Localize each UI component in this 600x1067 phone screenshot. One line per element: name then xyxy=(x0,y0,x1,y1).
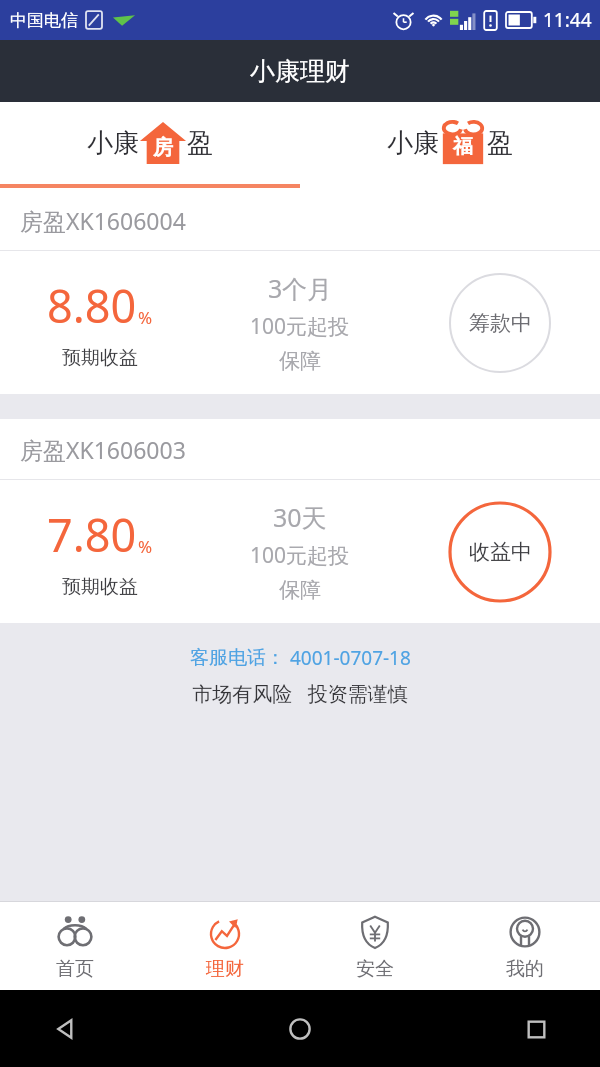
button[interactable]: 理财 xyxy=(150,902,300,990)
button[interactable]: Recents xyxy=(508,1001,564,1057)
staticText: 我的 xyxy=(506,957,544,981)
staticText: % xyxy=(138,306,153,329)
staticText: 首页 xyxy=(56,957,94,981)
staticText: 盈 xyxy=(187,127,213,160)
button[interactable]: 小康 xyxy=(0,102,300,184)
button[interactable]: 房盈XK1606004 xyxy=(0,190,600,394)
staticText: 4001-0707-18 xyxy=(285,645,411,671)
staticText: 福 xyxy=(453,134,473,159)
staticText: 小康理财 xyxy=(250,56,350,87)
staticText: 预期收益 xyxy=(62,346,138,370)
staticText: 盈 xyxy=(487,127,513,160)
button[interactable]: 安全 xyxy=(300,902,450,990)
staticText: % xyxy=(138,535,153,558)
staticText: 预期收益 xyxy=(62,575,138,599)
button[interactable]: Back xyxy=(36,1001,92,1057)
button[interactable]: 首页 xyxy=(0,902,150,990)
button[interactable]: 收益中 xyxy=(448,502,552,602)
button[interactable]: 客服电话： xyxy=(190,645,411,671)
button[interactable]: Home xyxy=(272,1001,328,1057)
staticText: 理财 xyxy=(206,957,244,981)
staticText: 房盈XK1606003 xyxy=(20,434,186,465)
button[interactable]: 房盈XK1606003 xyxy=(0,419,600,623)
staticText: 安全 xyxy=(356,957,394,981)
button[interactable]: 我的 xyxy=(450,902,600,990)
staticText: 100元起投 xyxy=(250,312,350,341)
staticText: 客服电话： xyxy=(190,646,285,670)
button[interactable]: 小康 xyxy=(300,102,600,184)
staticText: 7.80 xyxy=(47,504,137,565)
staticText: 保障 xyxy=(279,348,321,374)
staticText: 100元起投 xyxy=(250,541,350,570)
staticText: 30天 xyxy=(273,500,327,534)
staticText: 市场有风险 投资需谨慎 xyxy=(192,680,408,707)
staticText: 保障 xyxy=(279,577,321,603)
staticText: 房盈XK1606004 xyxy=(20,205,186,236)
staticText: 8.80 xyxy=(47,275,137,336)
staticText: 筹款中 xyxy=(469,310,532,336)
staticText: 中国电信 xyxy=(10,10,78,31)
staticText: 小康 xyxy=(387,127,439,160)
staticText: 11:44 xyxy=(543,7,592,33)
staticText: 小康 xyxy=(87,127,139,160)
staticText: 3个月 xyxy=(268,271,333,305)
button[interactable]: 筹款中 xyxy=(448,273,552,373)
staticText: 收益中 xyxy=(469,539,532,565)
staticText: 房 xyxy=(153,135,173,160)
